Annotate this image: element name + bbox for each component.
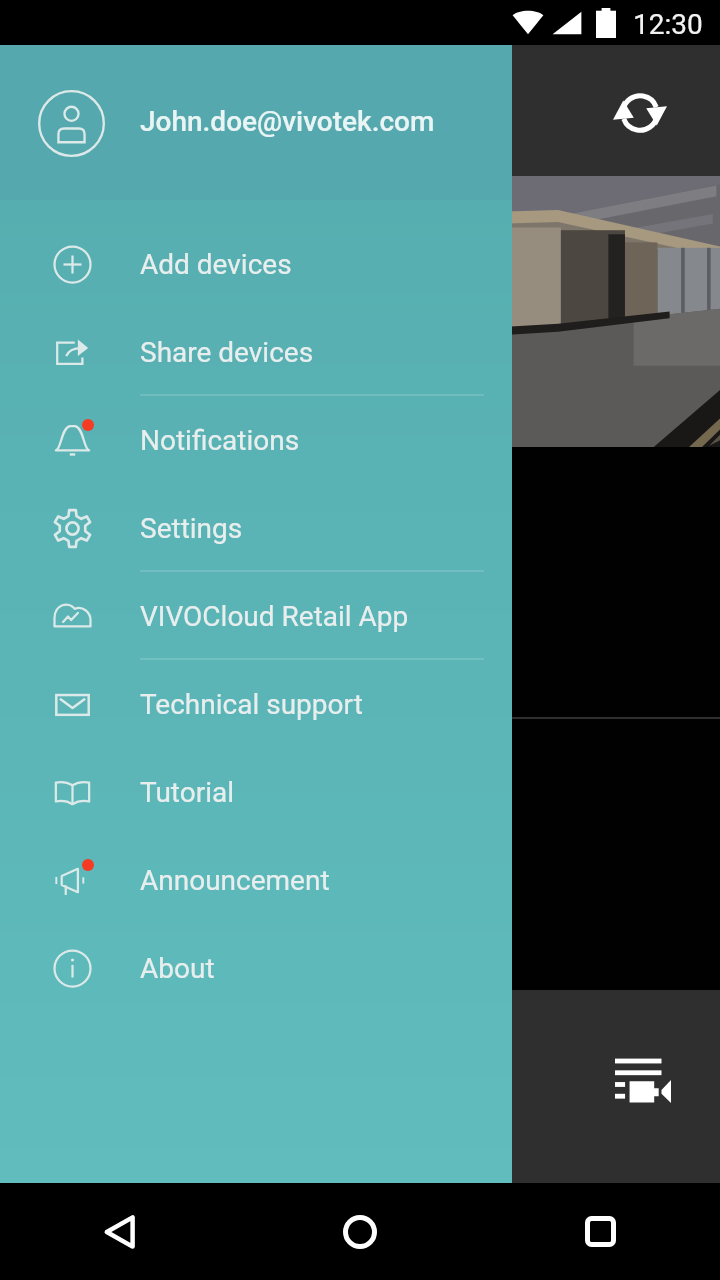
button[interactable]: Recordings <box>609 1046 677 1114</box>
staticText: Announcement <box>140 864 330 897</box>
button[interactable]: About <box>0 924 512 1012</box>
button[interactable]: Technical support <box>0 660 512 748</box>
staticText: Technical support <box>140 688 363 721</box>
button[interactable]: John.doe@vivotek.com <box>0 45 512 200</box>
staticText: 12:30 <box>633 8 703 41</box>
button[interactable]: Announcement <box>0 836 512 924</box>
button[interactable]: Recent apps <box>480 1183 720 1280</box>
button[interactable]: Notifications <box>0 396 512 484</box>
staticText: Notifications <box>140 424 300 457</box>
button[interactable]: Settings <box>0 484 512 572</box>
button[interactable]: Tutorial <box>0 748 512 836</box>
button[interactable]: VIVOCloud Retail App <box>0 572 512 660</box>
staticText: Add devices <box>140 248 292 281</box>
button[interactable]: Refresh <box>606 79 674 147</box>
staticText: Share devices <box>140 336 314 369</box>
button[interactable]: Share devices <box>0 308 512 396</box>
button[interactable]: Back <box>0 1183 240 1280</box>
staticText: Tutorial <box>140 776 235 809</box>
staticText: VIVOCloud Retail App <box>140 600 409 633</box>
staticText: Settings <box>140 512 243 545</box>
button[interactable]: Add devices <box>0 220 512 308</box>
button[interactable]: Home <box>240 1183 480 1280</box>
staticText: John.doe@vivotek.com <box>140 105 435 138</box>
staticText: About <box>140 952 215 985</box>
